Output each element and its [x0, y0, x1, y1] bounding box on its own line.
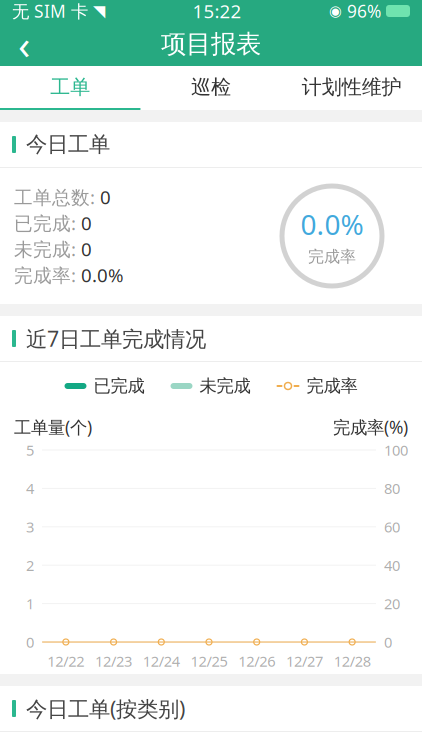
button[interactable]: 返回: [0, 22, 48, 66]
staticText: 20: [384, 594, 400, 613]
staticText: 96%: [347, 0, 381, 22]
staticText: 12/27: [286, 651, 323, 671]
staticText: 12/24: [143, 651, 180, 671]
staticText: 0.0%: [300, 206, 363, 243]
staticText: 0.0%: [81, 263, 124, 287]
staticText: 0: [384, 632, 392, 652]
staticText: 60: [384, 517, 400, 537]
staticText: 12/23: [95, 651, 132, 671]
staticText: ◉: [329, 3, 342, 19]
staticText: 12/22: [47, 651, 84, 671]
staticText: 完成率: [308, 247, 356, 266]
button[interactable]: 计划性维护: [281, 66, 422, 110]
staticText: 工单总数:: [14, 185, 100, 209]
staticText: 完成率: [306, 375, 357, 397]
staticText: 完成率(%): [333, 415, 408, 438]
staticText: 12/28: [334, 651, 371, 671]
staticText: 项目报表: [161, 28, 261, 59]
staticText: 4: [26, 479, 34, 498]
staticText: 今日工单: [26, 131, 110, 158]
button[interactable]: 巡检: [141, 66, 281, 110]
staticText: 100: [384, 440, 408, 460]
staticText: 5: [26, 440, 34, 460]
staticText: 未完成: [199, 375, 250, 397]
staticText: 12/26: [238, 651, 275, 671]
staticText: 工单量(个): [14, 415, 92, 438]
staticText: 计划性维护: [302, 75, 402, 99]
staticText: 无 SIM 卡: [12, 0, 88, 22]
staticText: 已完成: [93, 375, 144, 397]
staticText: 1: [26, 594, 34, 613]
staticText: ◥: [93, 2, 105, 20]
staticText: 巡检: [191, 75, 231, 99]
staticText: 0: [100, 185, 111, 209]
staticText: 未完成:: [14, 237, 81, 261]
staticText: 12/25: [190, 651, 227, 671]
staticText: 3: [26, 517, 34, 537]
staticText: 完成率:: [14, 263, 81, 287]
staticText: 0: [81, 211, 92, 235]
staticText: 40: [384, 555, 400, 575]
staticText: 工单: [50, 75, 90, 99]
staticText: 今日工单(按类别): [26, 694, 185, 723]
staticText: 0: [26, 632, 34, 652]
staticText: ‹: [18, 17, 30, 70]
staticText: 近7日工单完成情况: [26, 324, 206, 353]
staticText: 已完成:: [14, 211, 81, 235]
staticText: 15:22: [192, 0, 241, 23]
staticText: 2: [26, 555, 34, 575]
staticText: 0: [81, 237, 92, 261]
button[interactable]: 工单: [0, 66, 141, 110]
staticText: 80: [384, 479, 400, 498]
